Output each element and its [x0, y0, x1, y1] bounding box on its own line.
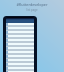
button[interactable] [6, 47, 34, 51]
button[interactable] [6, 63, 34, 67]
staticText: #flutterdeveloper [16, 2, 48, 7]
button[interactable] [6, 67, 34, 71]
button[interactable] [6, 59, 34, 63]
button[interactable] [6, 35, 34, 39]
button[interactable] [6, 55, 34, 59]
button[interactable] [6, 51, 34, 55]
button[interactable] [6, 23, 34, 27]
button[interactable] [6, 27, 34, 31]
button[interactable] [6, 31, 34, 35]
button[interactable] [6, 43, 34, 47]
button[interactable] [6, 39, 34, 43]
staticText: list page [26, 8, 38, 12]
